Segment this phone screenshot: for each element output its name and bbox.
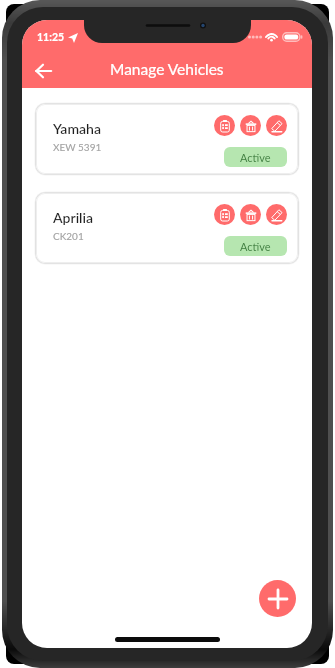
button[interactable]: Add vehicle xyxy=(259,580,296,617)
staticText: Active xyxy=(240,151,271,164)
staticText: Aprilia xyxy=(53,209,94,226)
button[interactable]: Delete xyxy=(240,204,261,225)
staticText: Active xyxy=(240,240,271,253)
button[interactable]: Back xyxy=(26,54,60,88)
staticText: CK201 xyxy=(53,230,84,242)
staticText: 11:25 xyxy=(37,31,65,44)
button[interactable]: Yamaha xyxy=(36,104,298,174)
button[interactable]: Delete xyxy=(240,115,261,136)
button[interactable]: Details xyxy=(214,115,235,136)
button[interactable]: Aprilia xyxy=(36,193,298,263)
staticText: Yamaha xyxy=(53,120,101,137)
staticText: XEW 5391 xyxy=(53,141,102,153)
button[interactable]: Active xyxy=(224,147,287,167)
button[interactable]: Edit xyxy=(266,115,287,136)
button[interactable]: Details xyxy=(214,204,235,225)
button[interactable]: Edit xyxy=(266,204,287,225)
staticText: Manage Vehicles xyxy=(110,60,224,79)
button[interactable]: Active xyxy=(224,236,287,256)
